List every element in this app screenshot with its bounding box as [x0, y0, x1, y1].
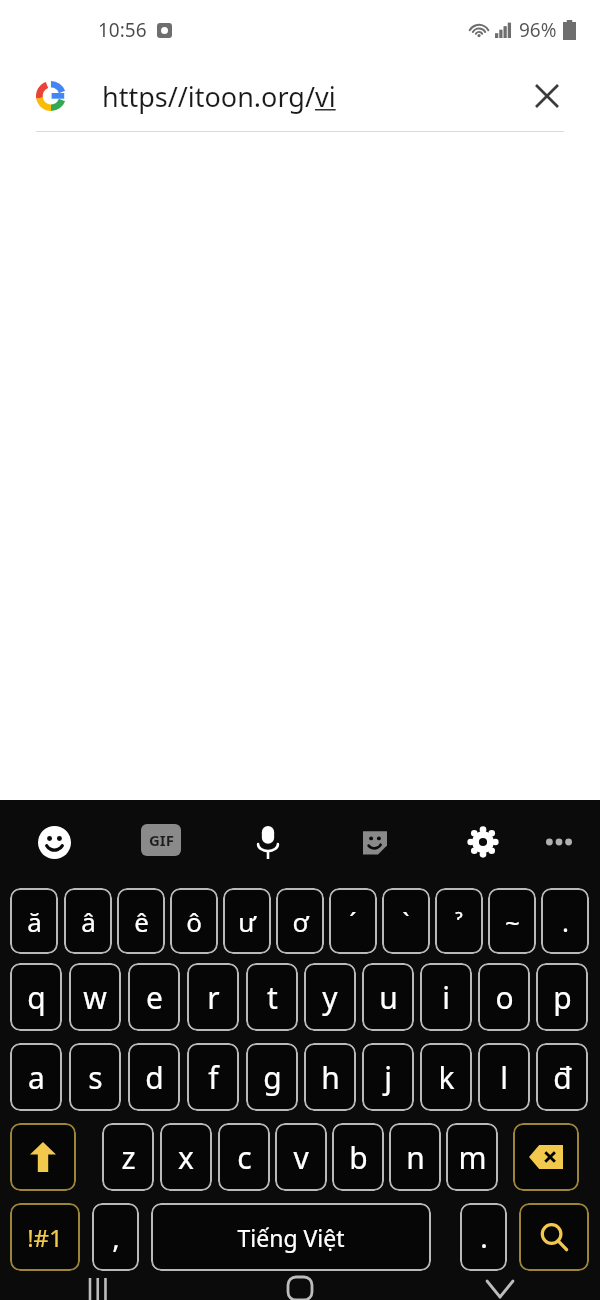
button[interactable]: n [389, 1123, 441, 1191]
button[interactable]: ` [382, 888, 430, 954]
staticText: d [145, 1057, 164, 1098]
button[interactable]: đ [536, 1043, 588, 1111]
other: Backspace [513, 1123, 590, 1191]
button[interactable]: . [460, 1203, 507, 1271]
button[interactable]: !#1 [10, 1203, 80, 1271]
button[interactable] [10, 1123, 76, 1191]
button[interactable]: Hide keyboard [400, 1277, 600, 1300]
button[interactable]: ô [170, 888, 218, 954]
button[interactable]: ư [223, 888, 271, 954]
staticText: Tiếng Việt [237, 1222, 345, 1253]
button[interactable] [513, 1123, 579, 1191]
button[interactable]: ă [10, 888, 58, 954]
button[interactable]: , [92, 1203, 139, 1271]
staticText: o [495, 977, 514, 1018]
staticText: x [178, 1137, 194, 1178]
button[interactable]: s [69, 1043, 121, 1111]
staticText: i [442, 977, 450, 1018]
staticText: b [349, 1137, 368, 1178]
staticText: c [237, 1137, 252, 1178]
button[interactable]: ơ [276, 888, 324, 954]
staticText: ˀ [455, 904, 463, 939]
staticText: 10:56 [98, 17, 147, 43]
staticText: q [27, 977, 46, 1018]
button[interactable]: Tiếng Việt [151, 1203, 431, 1271]
button[interactable]: ~ [488, 888, 536, 954]
staticText: ă [27, 904, 42, 939]
staticText: 96% [519, 17, 557, 43]
button[interactable]: p [536, 963, 588, 1031]
button[interactable]: ´ [329, 888, 377, 954]
staticText: g [263, 1057, 282, 1098]
staticText: ê [134, 904, 149, 939]
button[interactable]: v [275, 1123, 327, 1191]
button[interactable]: o [478, 963, 530, 1031]
button[interactable]: ê [117, 888, 165, 954]
button[interactable]: ˀ [435, 888, 483, 954]
staticText: p [553, 977, 572, 1018]
button[interactable]: r [187, 963, 239, 1031]
button[interactable]: Emoji [34, 822, 74, 862]
button[interactable]: f [187, 1043, 239, 1111]
staticText: j [384, 1057, 392, 1098]
button[interactable]: q [10, 963, 62, 1031]
staticText: GIF [149, 830, 174, 850]
button[interactable]: b [332, 1123, 384, 1191]
staticText: y [322, 977, 338, 1018]
button[interactable]: Clear text [530, 79, 564, 113]
staticText: e [146, 977, 163, 1018]
staticText: v [293, 1137, 309, 1178]
other: Search [519, 1203, 590, 1271]
button[interactable]: k [420, 1043, 472, 1111]
button[interactable]: m [446, 1123, 498, 1191]
button[interactable]: g [246, 1043, 298, 1111]
staticText: n [406, 1137, 425, 1178]
staticText: . [562, 904, 569, 939]
button[interactable]: l [478, 1043, 530, 1111]
staticText: h [321, 1057, 340, 1098]
button[interactable]: d [128, 1043, 180, 1111]
button[interactable]: More options [539, 822, 579, 862]
button[interactable]: e [128, 963, 180, 1031]
staticText: vi [315, 78, 336, 115]
staticText: ư [238, 904, 256, 939]
staticText: ´ [349, 904, 357, 939]
button[interactable]: w [69, 963, 121, 1031]
button[interactable]: a [10, 1043, 62, 1111]
staticText: . [480, 1218, 488, 1256]
staticText: t [267, 977, 278, 1018]
button[interactable]: Google [34, 79, 68, 113]
button[interactable]: â [64, 888, 112, 954]
staticText: â [81, 904, 96, 939]
staticText: r [207, 977, 220, 1018]
button[interactable]: u [362, 963, 414, 1031]
button[interactable]: c [218, 1123, 270, 1191]
staticText: , [112, 1218, 120, 1256]
button[interactable]: Home [200, 1277, 400, 1300]
button[interactable] [519, 1203, 589, 1271]
button[interactable]: . [541, 888, 589, 954]
staticText: f [208, 1057, 219, 1098]
button[interactable]: z [102, 1123, 154, 1191]
button[interactable]: i [420, 963, 472, 1031]
staticText: đ [553, 1057, 572, 1098]
button[interactable]: Recent apps [0, 1277, 200, 1300]
staticText: s [88, 1057, 103, 1098]
staticText: a [28, 1057, 45, 1098]
staticText: m [458, 1137, 487, 1178]
button[interactable]: x [160, 1123, 212, 1191]
staticText: https//itoon.org/ [102, 78, 315, 115]
button[interactable]: Voice input [248, 822, 288, 862]
staticText: k [438, 1057, 455, 1098]
button[interactable]: t [246, 963, 298, 1031]
staticText: w [83, 977, 107, 1018]
button[interactable]: h [304, 1043, 356, 1111]
button[interactable]: Stickers [355, 822, 395, 862]
button[interactable]: Keyboard settings [463, 822, 503, 862]
staticText: u [379, 977, 398, 1018]
button[interactable]: j [362, 1043, 414, 1111]
staticText: ~ [505, 904, 520, 939]
button[interactable]: GIF [141, 824, 181, 856]
button[interactable]: y [304, 963, 356, 1031]
staticText: ơ [292, 904, 309, 939]
